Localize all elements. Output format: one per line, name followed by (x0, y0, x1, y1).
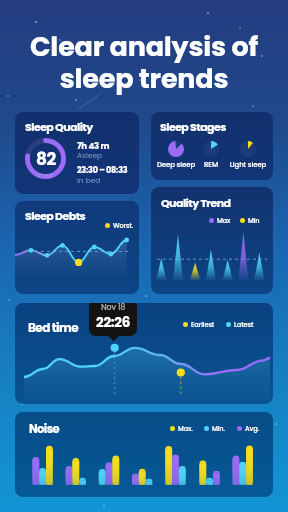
button[interactable]: Quality Trend (151, 187, 273, 294)
staticText: Deep sleep (152, 160, 200, 170)
staticText: 7h 43 m (77, 140, 110, 152)
staticText: Nov 18 (101, 303, 126, 313)
button[interactable]: Sleep Stages (151, 112, 273, 180)
staticText: Max. (178, 424, 193, 433)
staticText: Sleep Quality (25, 119, 93, 134)
staticText: Avg. (245, 424, 260, 433)
staticText: Light sleep (224, 160, 272, 170)
staticText: Max (217, 216, 231, 225)
button[interactable]: Sleep Quality (15, 112, 139, 194)
staticText: Latest (234, 320, 254, 329)
staticText: Worst. (113, 221, 134, 230)
button[interactable]: Bed time (15, 303, 273, 404)
staticText: In bed (77, 175, 101, 185)
staticText: Great! (37, 171, 55, 179)
staticText: Noise (29, 421, 60, 437)
staticText: Sleep Stages (160, 119, 226, 134)
staticText: 23:30 – 08:33 (77, 165, 128, 176)
staticText: Min (248, 216, 260, 225)
staticText: 82 (36, 147, 56, 171)
staticText: Asleep (77, 150, 103, 160)
button[interactable]: Sleep Debts (15, 201, 139, 294)
staticText: Quality Trend (161, 195, 231, 210)
staticText: 22:26 (96, 313, 131, 332)
button[interactable]: Noise (15, 412, 273, 497)
staticText: Earliest (191, 320, 215, 329)
staticText: Bed time (28, 319, 79, 336)
staticText: Sleep Debts (25, 208, 86, 223)
staticText: Clear analysis of sleep trends (0, 28, 288, 97)
staticText: Min. (212, 424, 226, 433)
staticText: REM (187, 160, 235, 170)
